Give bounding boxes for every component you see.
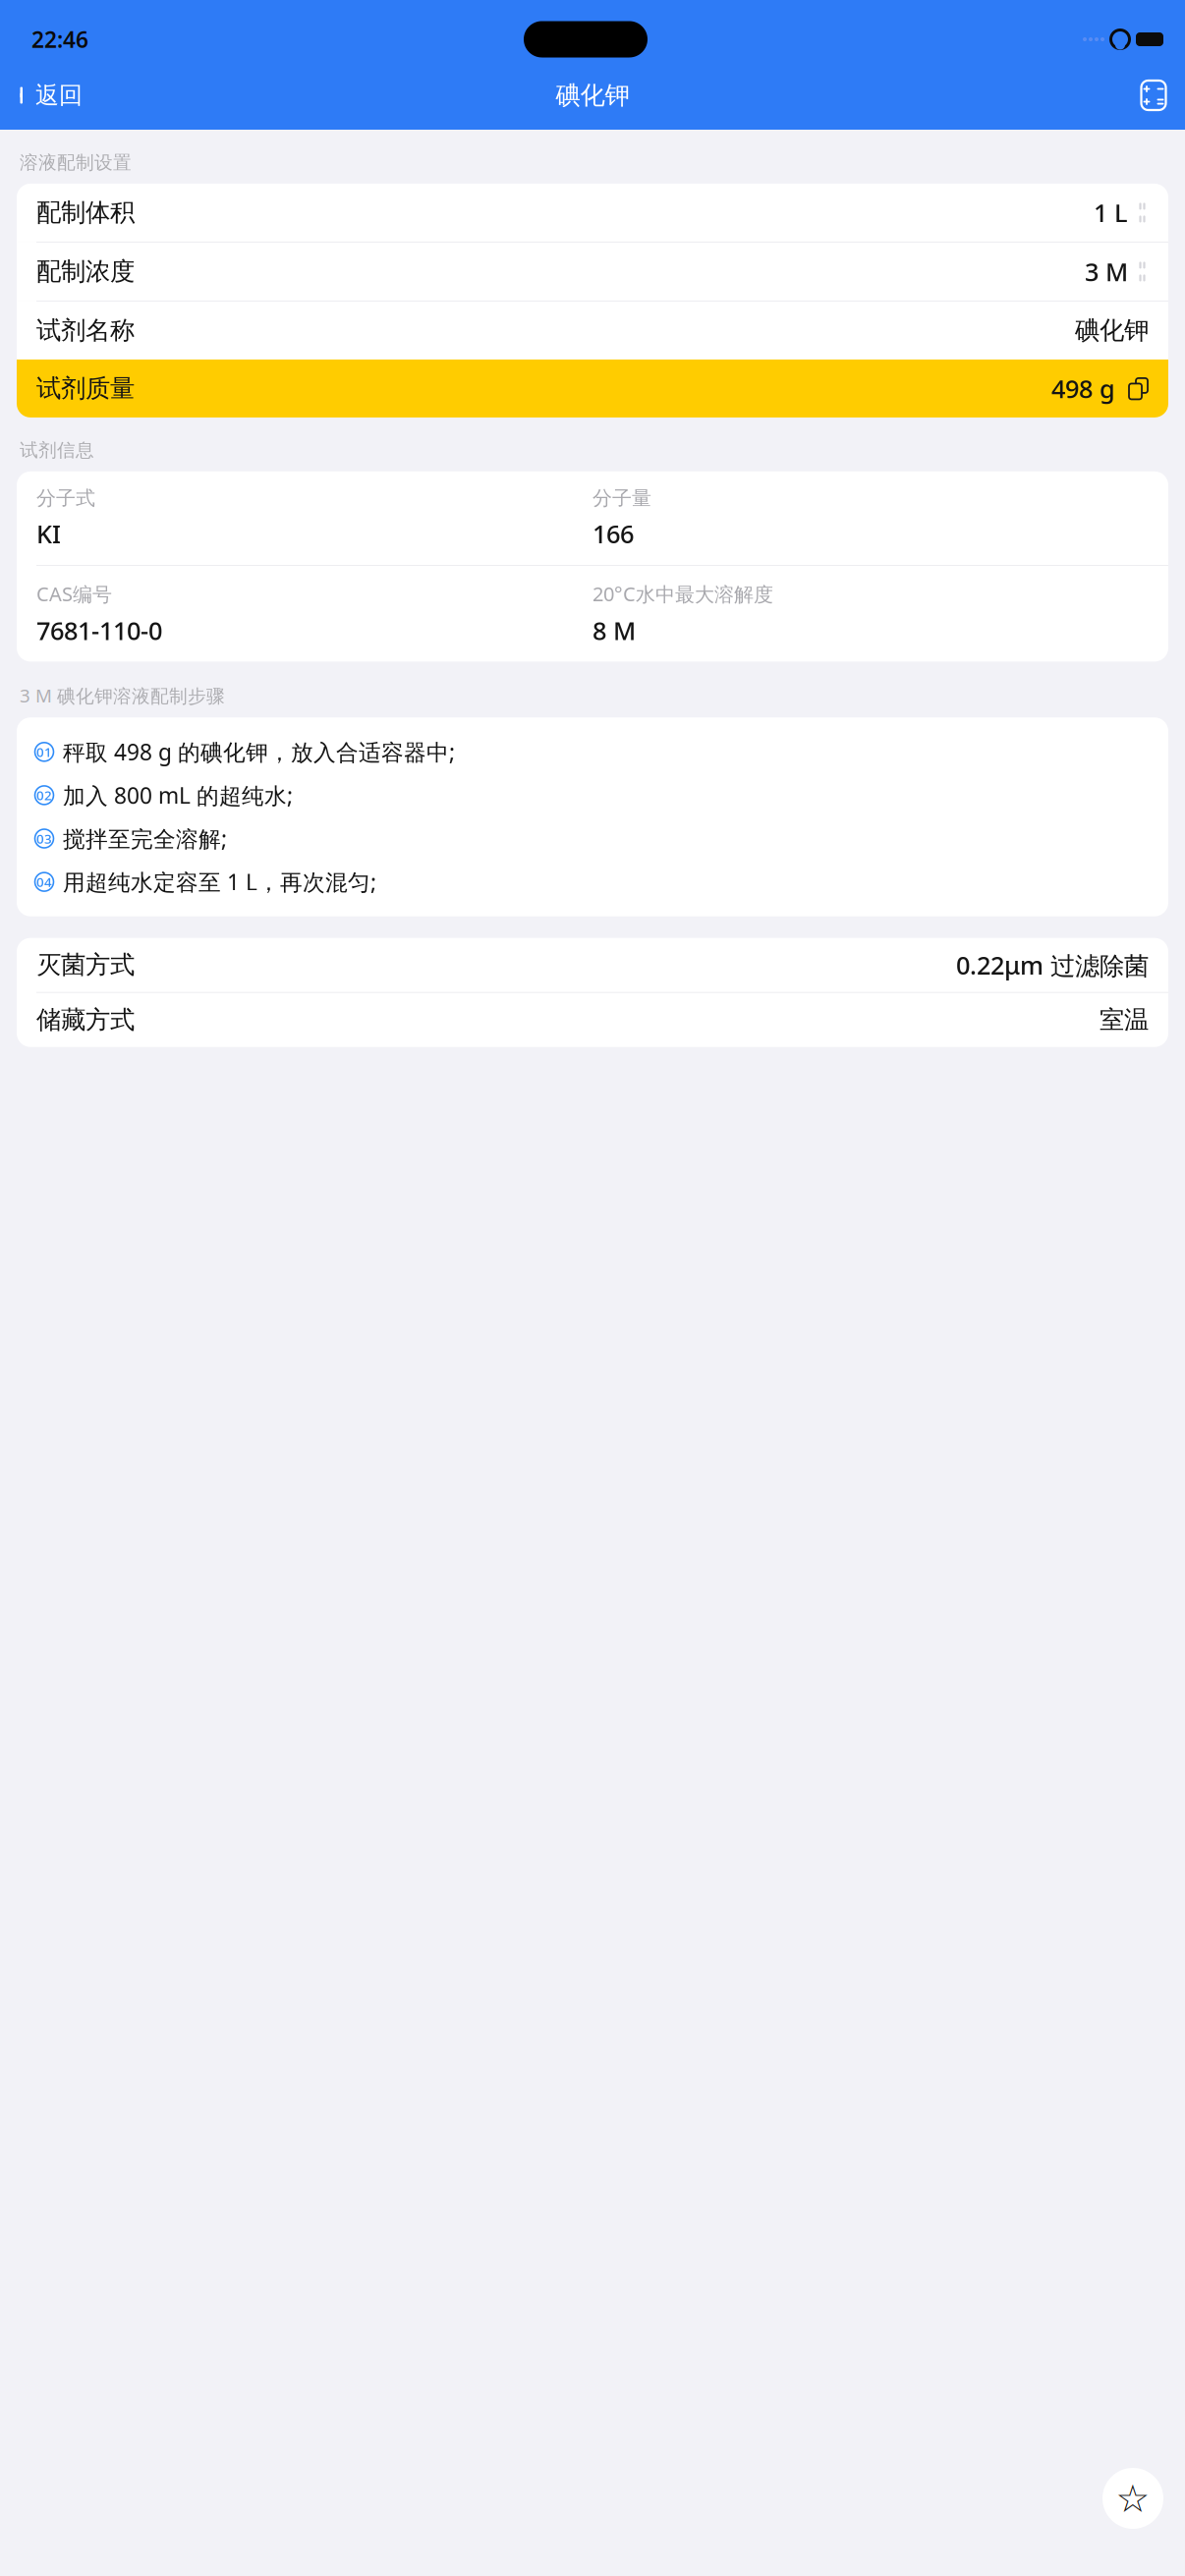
staticText: ☆	[1116, 2477, 1150, 2520]
staticText: 秤取 498 g 的碘化钾，放入合适容器中;	[63, 737, 455, 767]
staticText: 7681-110-0	[36, 614, 162, 647]
button[interactable]: 配制浓度	[17, 243, 1168, 301]
staticText: 灭菌方式	[36, 950, 135, 980]
staticText: 加入 800 mL 的超纯水;	[63, 780, 293, 810]
staticText: KI	[36, 517, 61, 550]
staticText: CAS编号	[36, 581, 112, 607]
staticText: 22:46	[31, 24, 88, 54]
staticText: 试剂质量	[36, 373, 135, 404]
staticText: 8 M	[592, 614, 636, 647]
staticText: 碘化钾	[1075, 315, 1149, 346]
staticText: 04	[36, 873, 52, 891]
staticText: 试剂名称	[36, 315, 135, 346]
staticText: 01	[36, 743, 52, 761]
staticText: 储藏方式	[36, 1005, 135, 1035]
button[interactable]: 收藏	[1102, 2468, 1163, 2529]
staticText: 20°C水中最大溶解度	[592, 581, 773, 607]
staticText: 3 M	[1085, 255, 1128, 288]
staticText: 试剂信息	[20, 439, 94, 462]
button[interactable]: 试剂质量	[17, 359, 1168, 417]
staticText: 搅拌至完全溶解;	[63, 824, 227, 853]
staticText: 配制体积	[36, 197, 135, 228]
staticText: 返回	[35, 81, 83, 110]
staticText: 166	[592, 517, 634, 550]
button[interactable]: 返回	[0, 74, 100, 117]
button[interactable]: 配制体积	[17, 184, 1168, 242]
staticText: 498 g	[1051, 372, 1115, 405]
staticText: 1 L	[1094, 196, 1128, 229]
staticText: 用超纯水定容至 1 L，再次混匀;	[63, 867, 376, 897]
staticText: 02	[36, 787, 52, 804]
staticText: 溶液配制设置	[20, 151, 132, 174]
staticText: 碘化钾	[556, 80, 629, 111]
staticText: 0.22μm 过滤除菌	[956, 948, 1149, 982]
staticText: 分子量	[592, 486, 651, 510]
staticText: 03	[36, 830, 52, 847]
staticText: 分子式	[36, 486, 95, 510]
button[interactable]: 计算器	[1122, 74, 1185, 117]
staticText: 室温	[1100, 1005, 1149, 1035]
staticText: 3 M 碘化钾溶液配制步骤	[20, 683, 225, 708]
staticText: 配制浓度	[36, 256, 135, 287]
